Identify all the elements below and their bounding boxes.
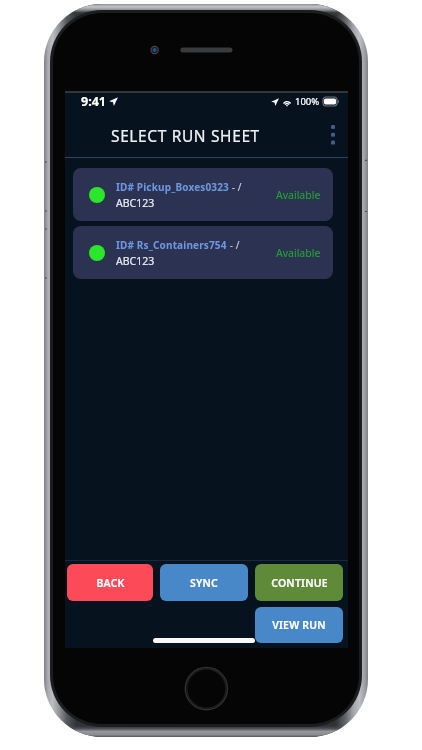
staticText: ID# Pickup_Boxes0323 [116, 180, 229, 194]
staticText: ID# Rs_Containers754 [116, 238, 227, 252]
staticText: VIEW RUN [272, 618, 326, 632]
staticText: BACK [96, 576, 125, 590]
staticText: 100% [295, 95, 320, 108]
staticText: Available [276, 246, 321, 260]
staticText: SELECT RUN SHEET [111, 125, 260, 146]
staticText: - / [229, 180, 242, 194]
staticText: ABC123 [116, 196, 155, 210]
button[interactable]: ID# Pickup_Boxes0323 [73, 168, 333, 221]
button[interactable]: SYNC [160, 564, 248, 601]
staticText: Available [276, 188, 321, 202]
button[interactable]: ID# Rs_Containers754 [73, 226, 333, 279]
button[interactable]: VIEW RUN [255, 607, 343, 643]
staticText: ABC123 [116, 254, 155, 268]
button[interactable]: BACK [67, 564, 153, 601]
button[interactable]: CONTINUE [255, 564, 343, 601]
staticText: CONTINUE [271, 576, 328, 590]
button[interactable]: More options [320, 122, 346, 148]
staticText: - / [227, 238, 240, 252]
staticText: 9:41 [81, 93, 106, 109]
staticText: SYNC [190, 576, 218, 590]
